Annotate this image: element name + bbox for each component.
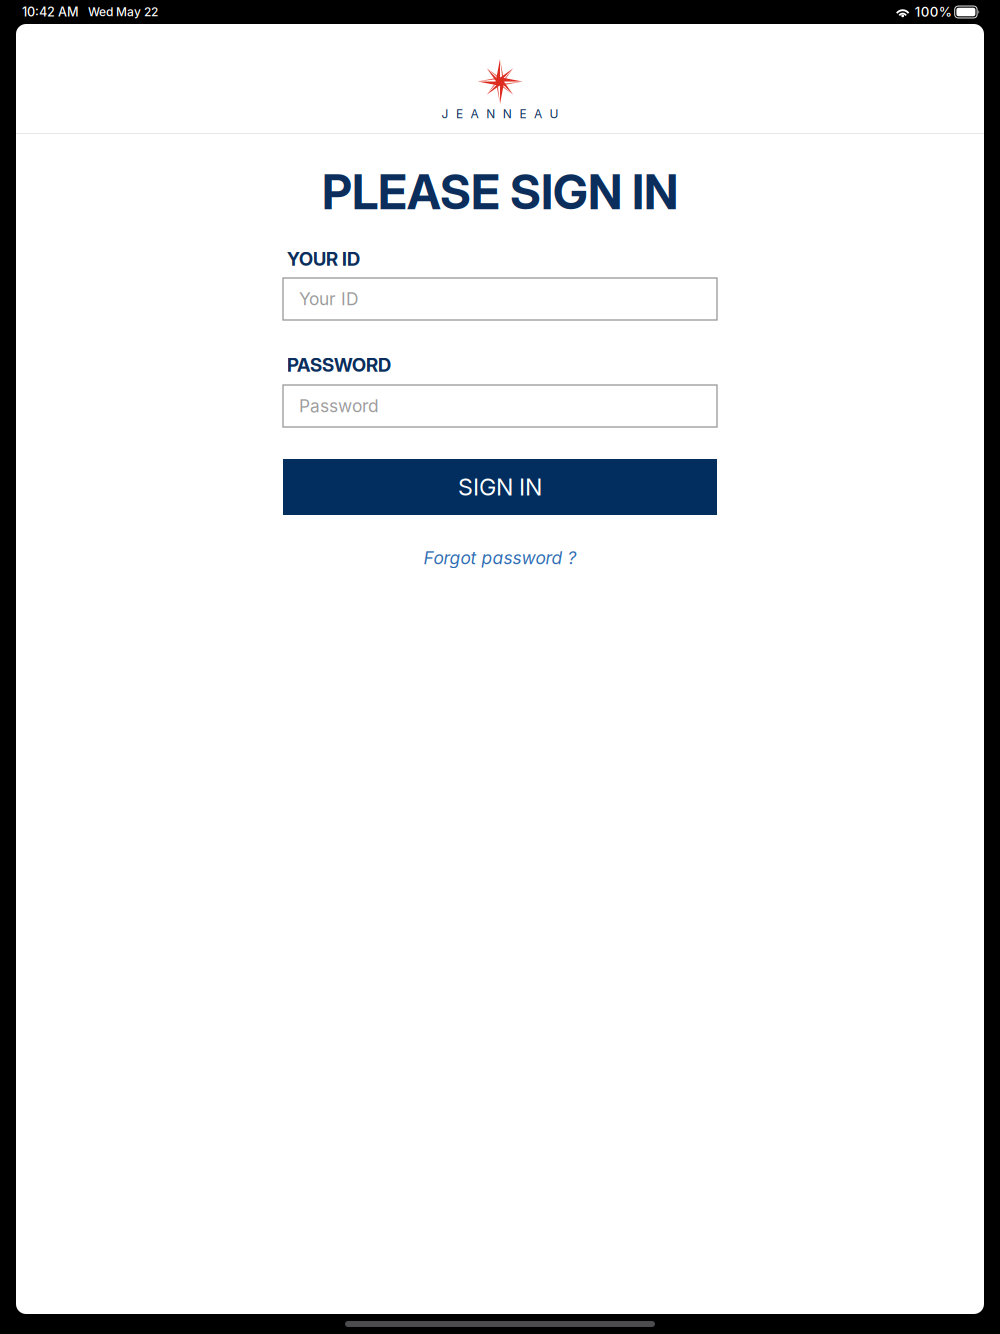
staticText: PLEASE SIGN IN xyxy=(322,163,678,221)
button[interactable]: SIGN IN xyxy=(283,459,717,515)
staticText: PASSWORD xyxy=(287,354,391,376)
staticText: Forgot password ? xyxy=(423,547,576,568)
staticText: 10:42 AM xyxy=(22,4,79,20)
staticText: SIGN IN xyxy=(458,473,542,501)
staticText: YOUR ID xyxy=(287,248,360,270)
button[interactable]: Password xyxy=(283,385,717,427)
button[interactable]: Your ID xyxy=(283,278,717,320)
staticText: JEANNEAU xyxy=(441,107,559,121)
staticText: Password xyxy=(299,395,379,416)
staticText: Wed May 22 xyxy=(88,5,158,19)
button[interactable]: Forgot password ? xyxy=(283,545,717,571)
staticText: 100% xyxy=(915,4,952,20)
staticText: Your ID xyxy=(299,288,359,309)
